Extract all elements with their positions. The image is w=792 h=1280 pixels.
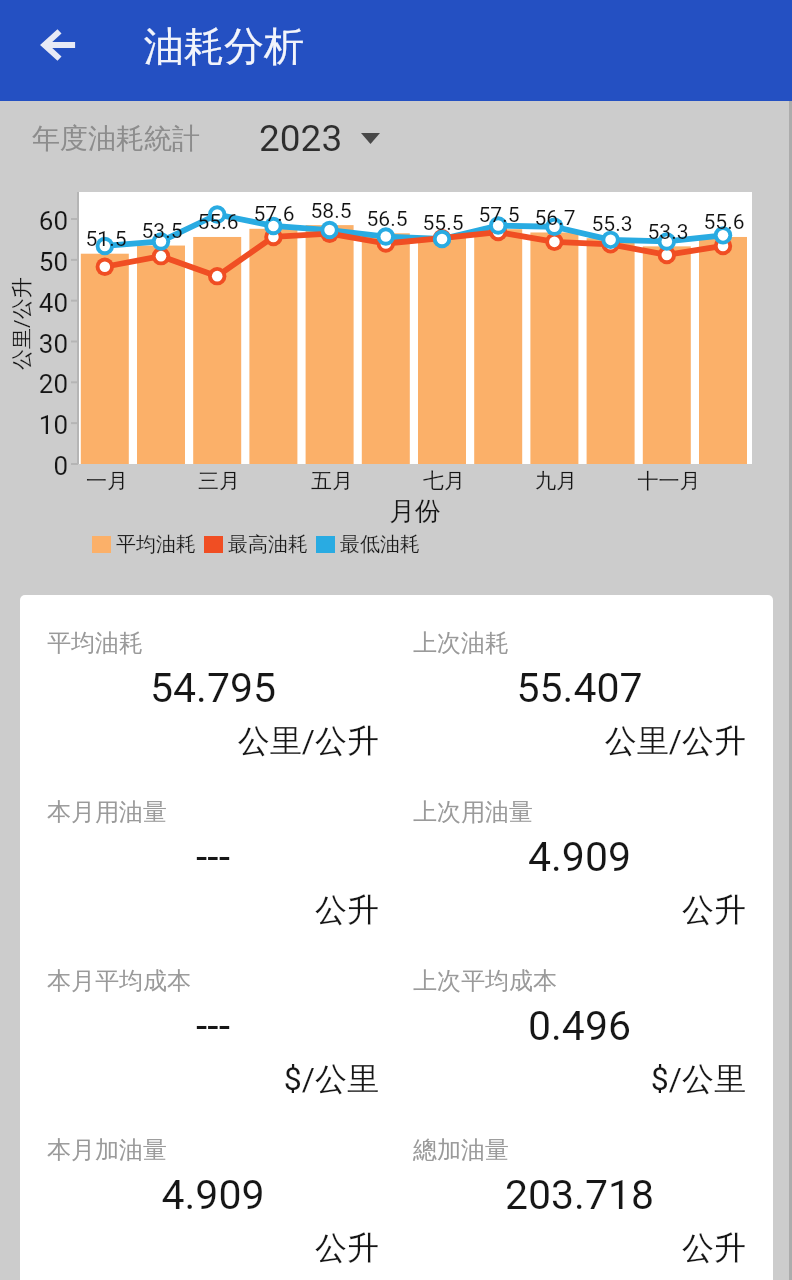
staticText: 公升 <box>413 1228 746 1268</box>
staticText: 五月 <box>272 468 392 494</box>
staticText: 十一月 <box>609 468 729 494</box>
staticText: 本月加油量 <box>47 1135 167 1165</box>
staticText: 最高油耗 <box>228 532 308 557</box>
staticText: 0 <box>0 451 68 481</box>
button[interactable]: 本月加油量 <box>30 1102 396 1271</box>
staticText: 4.909 <box>47 1171 379 1219</box>
staticText: 上次油耗 <box>413 628 509 658</box>
button[interactable]: 本月用油量 <box>30 764 396 933</box>
staticText: 60 <box>0 206 68 236</box>
staticText: 57.6 <box>229 202 319 227</box>
staticText: 七月 <box>384 468 504 494</box>
staticText: 年度油耗統計 <box>32 121 200 156</box>
staticText: $/公里 <box>47 1059 379 1099</box>
staticText: 20 <box>0 369 68 399</box>
staticText: 公里/公升 <box>47 721 379 761</box>
staticText: 油耗分析 <box>144 21 304 71</box>
staticText: 30 <box>0 329 68 359</box>
button[interactable]: 本月平均成本 <box>30 933 396 1102</box>
staticText: 51.5 <box>61 227 151 252</box>
staticText: 最低油耗 <box>340 532 420 557</box>
staticText: 54.795 <box>47 664 379 712</box>
staticText: 本月用油量 <box>47 797 167 827</box>
staticText: 公升 <box>413 890 746 930</box>
staticText: 10 <box>0 410 68 440</box>
staticText: 公升 <box>47 1228 379 1268</box>
staticText: 55.3 <box>567 212 657 237</box>
staticText: 40 <box>0 288 68 318</box>
staticText: 平均油耗 <box>47 628 143 658</box>
button[interactable]: 上次用油量 <box>396 764 763 933</box>
staticText: 一月 <box>47 468 167 494</box>
staticText: 55.5 <box>398 211 488 236</box>
button[interactable]: 上次油耗 <box>396 595 763 764</box>
staticText: 總加油量 <box>413 1135 509 1165</box>
staticText: --- <box>47 1002 379 1050</box>
staticText: 上次平均成本 <box>413 966 557 996</box>
staticText: 公里/公升 <box>9 277 35 370</box>
staticText: 50 <box>0 247 68 277</box>
button[interactable]: Back <box>28 13 92 77</box>
staticText: 56.5 <box>342 207 432 232</box>
staticText: 55.6 <box>679 210 769 235</box>
staticText: $/公里 <box>413 1059 746 1099</box>
staticText: 53.5 <box>117 219 207 244</box>
button[interactable]: 2023 <box>259 110 399 166</box>
staticText: 公升 <box>47 890 379 930</box>
staticText: 53.3 <box>623 220 713 245</box>
button[interactable]: 上次平均成本 <box>396 933 763 1102</box>
staticText: 公里/公升 <box>413 721 746 761</box>
staticText: 月份 <box>355 495 475 528</box>
staticText: 平均油耗 <box>116 532 196 557</box>
staticText: --- <box>47 833 379 881</box>
staticText: 0.496 <box>413 1002 746 1050</box>
staticText: 203.718 <box>413 1171 746 1219</box>
staticText: 三月 <box>159 468 279 494</box>
staticText: 上次用油量 <box>413 797 533 827</box>
staticText: 57.5 <box>454 203 544 228</box>
staticText: 55.6 <box>173 210 263 235</box>
staticText: 九月 <box>496 468 616 494</box>
staticText: 2023 <box>259 117 343 160</box>
staticText: 本月平均成本 <box>47 966 191 996</box>
staticText: 58.5 <box>286 199 376 224</box>
staticText: 4.909 <box>413 833 746 881</box>
button[interactable]: 平均油耗 <box>30 595 396 764</box>
staticText: 56.7 <box>510 206 600 231</box>
button[interactable]: 總加油量 <box>396 1102 763 1271</box>
staticText: 55.407 <box>413 664 746 712</box>
